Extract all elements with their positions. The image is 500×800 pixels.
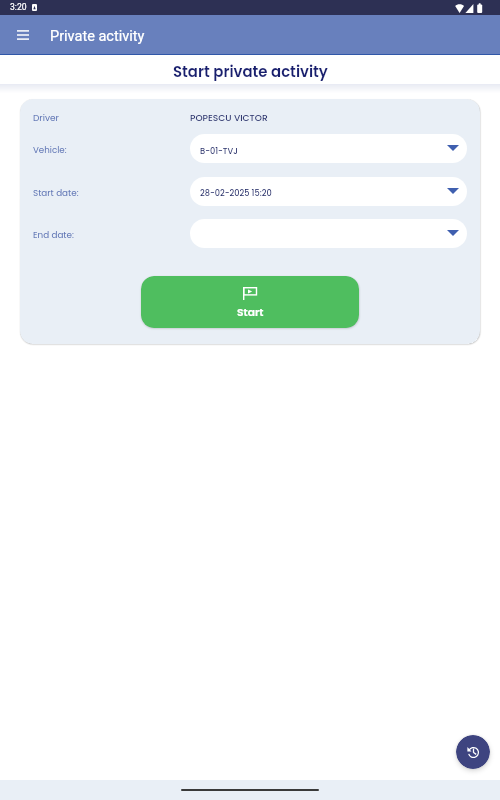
button[interactable]: Select value (190, 219, 467, 248)
staticText: 3:20 (10, 2, 27, 12)
button[interactable]: Activity history (456, 735, 490, 769)
staticText: Private activity (50, 28, 145, 45)
staticText: End date: (33, 229, 74, 241)
staticText: Start private activity (173, 61, 328, 82)
staticText: 28-02-2025 15:20 (200, 187, 272, 198)
button[interactable]: 28-02-2025 15:20 (190, 177, 467, 206)
staticText: B-01-TVJ (200, 145, 238, 156)
button[interactable]: Open navigation menu (10, 22, 35, 47)
staticText: Driver (33, 112, 59, 125)
staticText: POPESCU VICTOR (190, 111, 268, 124)
staticText: Start date: (33, 187, 79, 199)
button[interactable]: B-01-TVJ (190, 134, 467, 163)
staticText: Vehicle: (33, 144, 67, 156)
button[interactable]: Start (141, 276, 359, 328)
staticText: Start (237, 305, 264, 320)
